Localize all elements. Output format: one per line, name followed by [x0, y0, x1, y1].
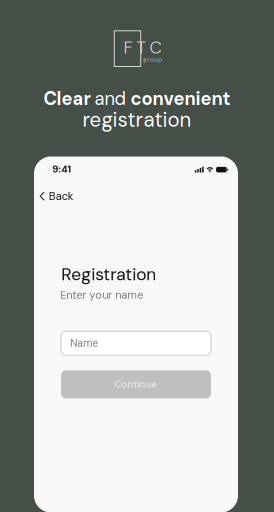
staticText: Name: [70, 336, 98, 350]
button[interactable]: Back: [34, 183, 84, 209]
staticText: FTC: [124, 36, 162, 59]
staticText: 9:41: [52, 163, 71, 175]
staticText: Clear and convenient: [43, 87, 230, 110]
button[interactable]: Continue: [61, 370, 211, 398]
staticText: Back: [49, 189, 74, 203]
staticText: Registration: [61, 263, 156, 286]
staticText: group: [143, 56, 162, 63]
staticText: Continue: [114, 378, 157, 391]
staticText: registration: [82, 106, 191, 133]
staticText: Enter your name: [60, 288, 143, 302]
